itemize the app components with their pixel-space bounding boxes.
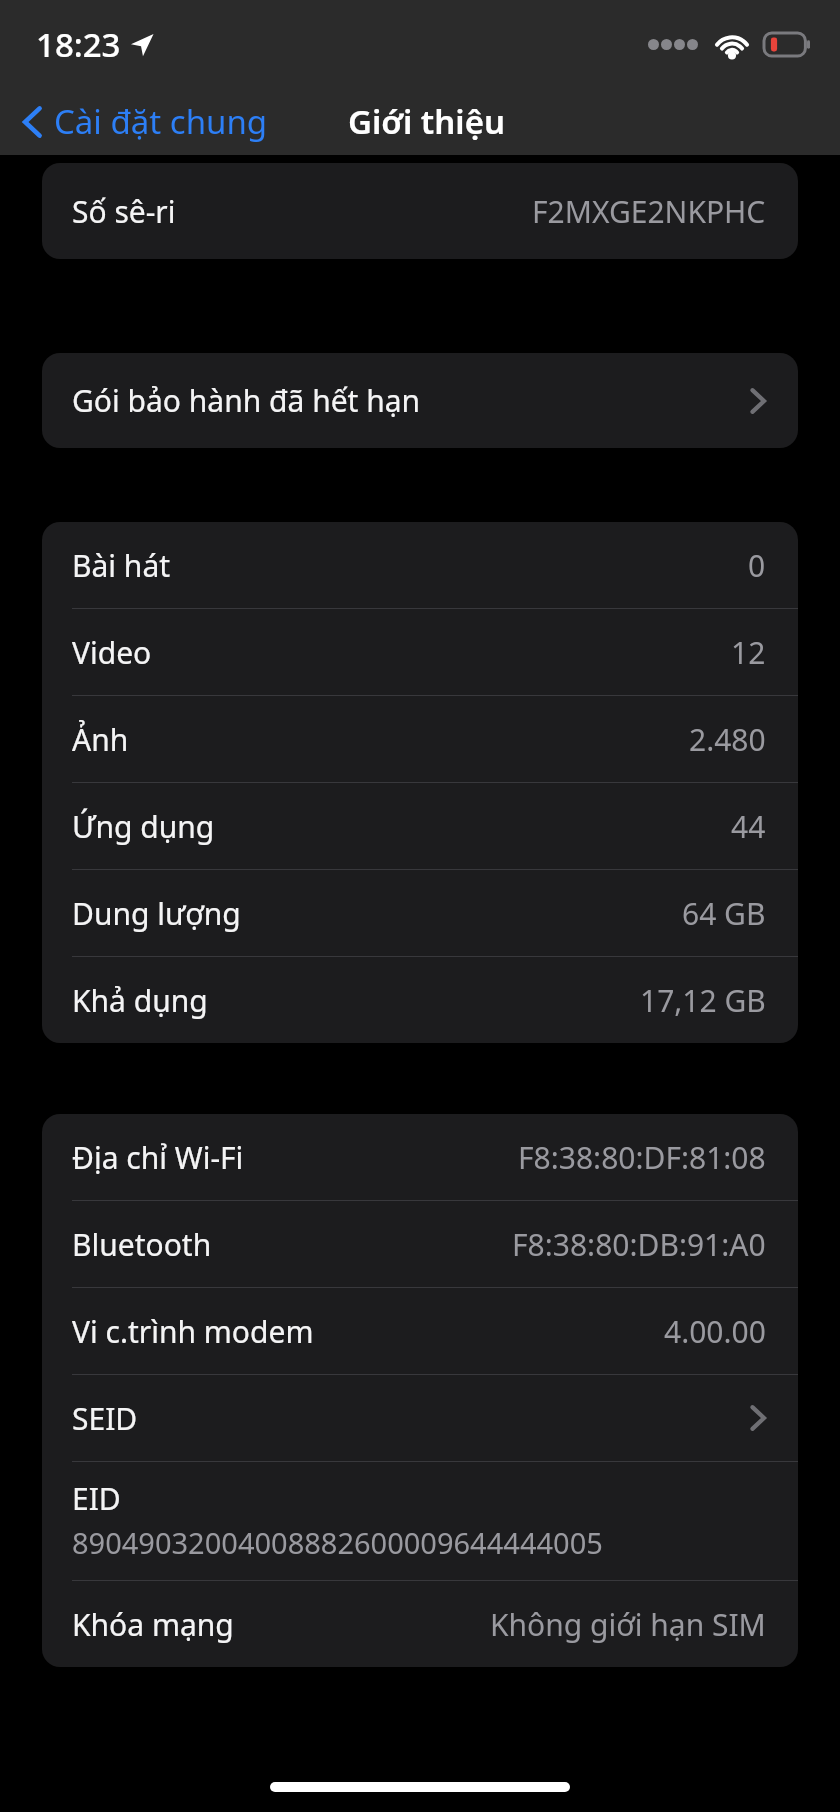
staticText: Cài đặt chung bbox=[54, 99, 268, 144]
button[interactable]: Khả dụng bbox=[42, 957, 798, 1043]
staticText: 89049032004008882600009644444005 bbox=[72, 1523, 603, 1562]
staticText: Bluetooth bbox=[72, 1224, 212, 1265]
button[interactable]: SEID bbox=[42, 1375, 798, 1461]
button[interactable]: Gói bảo hành đã hết hạn bbox=[42, 353, 798, 448]
staticText: F8:38:80:DF:81:08 bbox=[518, 1137, 766, 1178]
staticText: 2.480 bbox=[689, 719, 766, 760]
staticText: Video bbox=[72, 632, 152, 673]
staticText: 18:23 bbox=[36, 22, 121, 67]
button[interactable]: Bài hát bbox=[42, 522, 798, 608]
staticText: SEID bbox=[72, 1398, 138, 1439]
button[interactable]: Ảnh bbox=[42, 696, 798, 782]
staticText: F8:38:80:DB:91:A0 bbox=[512, 1224, 766, 1265]
staticText: EID bbox=[72, 1478, 121, 1519]
other: Gói bảo hành đã hết hạn bbox=[748, 384, 768, 418]
staticText: 17,12 GB bbox=[640, 980, 766, 1021]
button[interactable]: Vi c.trình modem bbox=[42, 1288, 798, 1374]
button[interactable]: Video bbox=[42, 609, 798, 695]
staticText: Vi c.trình modem bbox=[72, 1311, 314, 1352]
button[interactable]: Địa chỉ Wi-Fi bbox=[42, 1114, 798, 1200]
staticText: Gói bảo hành đã hết hạn bbox=[72, 380, 421, 421]
button[interactable]: Số sê-ri bbox=[42, 163, 798, 259]
staticText: 64 GB bbox=[682, 893, 766, 934]
staticText: Khả dụng bbox=[72, 980, 208, 1021]
staticText: Ứng dụng bbox=[72, 806, 215, 847]
staticText: Bài hát bbox=[72, 545, 171, 586]
staticText: Số sê-ri bbox=[72, 191, 176, 232]
button[interactable]: Cài đặt chung bbox=[0, 93, 278, 150]
button[interactable]: Bluetooth bbox=[42, 1201, 798, 1287]
button[interactable]: Dung lượng bbox=[42, 870, 798, 956]
staticText: F2MXGE2NKPHC bbox=[532, 191, 766, 232]
staticText: Giới thiệu bbox=[348, 99, 506, 144]
staticText: Khóa mạng bbox=[72, 1604, 234, 1645]
staticText: 12 bbox=[731, 632, 766, 673]
staticText: 0 bbox=[748, 545, 766, 586]
staticText: 44 bbox=[731, 806, 766, 847]
staticText: Địa chỉ Wi-Fi bbox=[72, 1137, 244, 1178]
button[interactable]: Khóa mạng bbox=[42, 1581, 798, 1667]
button[interactable]: Ứng dụng bbox=[42, 783, 798, 869]
other: SEID bbox=[748, 1401, 768, 1435]
staticText: 4.00.00 bbox=[664, 1311, 766, 1352]
button[interactable]: EID bbox=[42, 1462, 798, 1580]
staticText: Ảnh bbox=[72, 719, 129, 760]
staticText: Dung lượng bbox=[72, 893, 241, 934]
staticText: Không giới hạn SIM bbox=[490, 1604, 766, 1645]
